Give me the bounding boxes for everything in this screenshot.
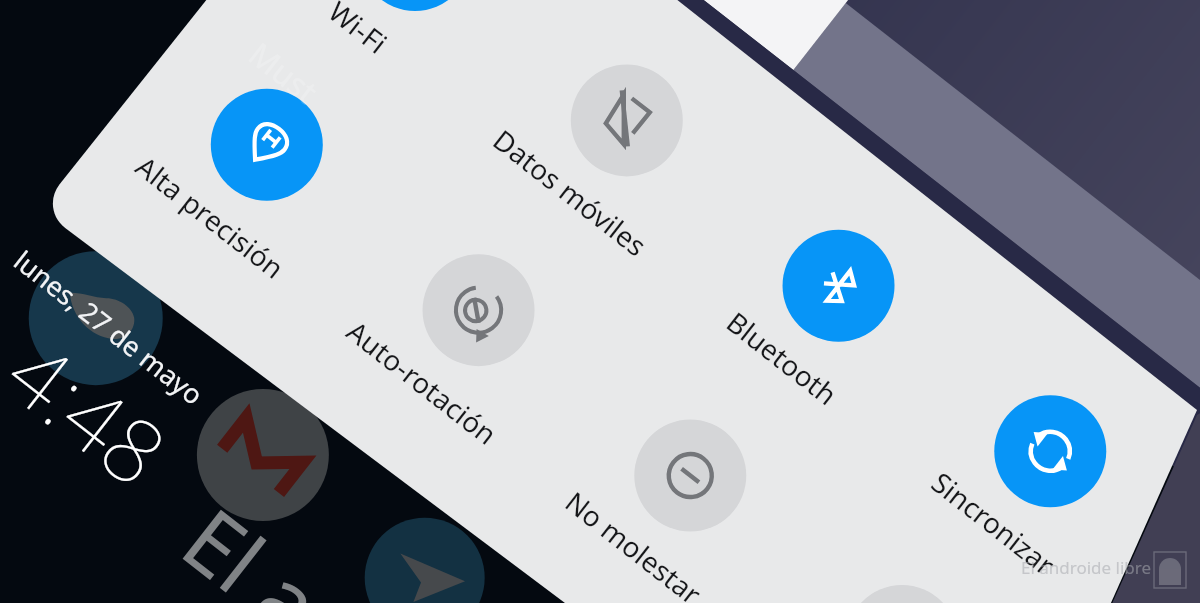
button[interactable]: Wi-Fi [247,0,583,143]
button[interactable]: Bluetooth [670,142,1006,473]
button[interactable]: No molestar [522,332,858,603]
button[interactable]: Datos móviles [458,0,794,307]
button[interactable]: Auto-rotación [310,166,646,497]
button[interactable]: Sincronizar [882,307,1200,603]
button[interactable]: Alta precisión [98,1,434,332]
button[interactable]: Linterna [734,497,1070,603]
